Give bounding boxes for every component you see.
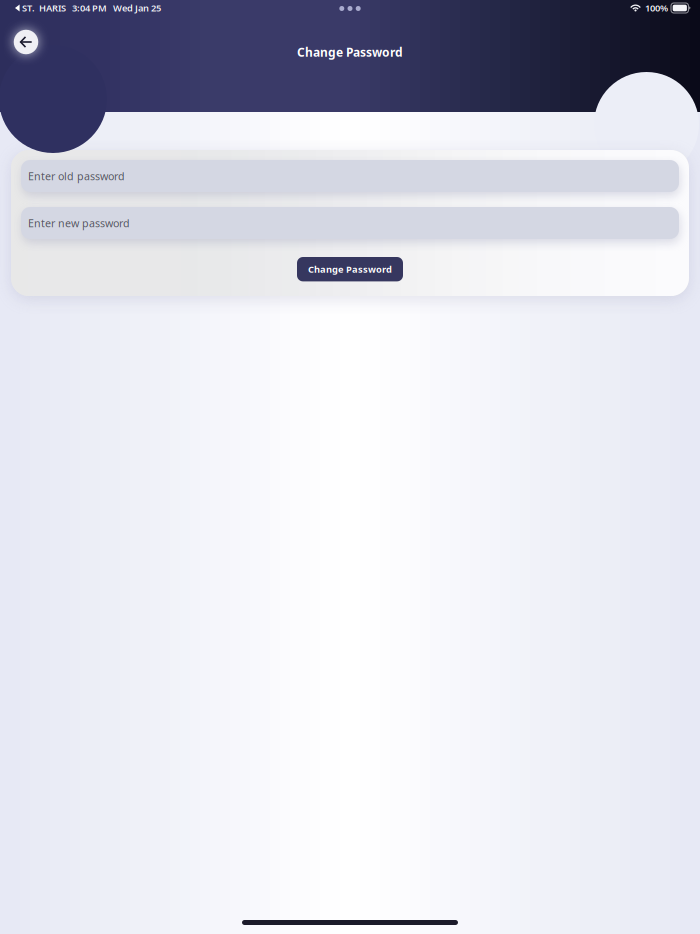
staticText: ST. HARIS 3:04 PM Wed Jan 25 [20, 2, 161, 14]
button[interactable]: Change Password [297, 257, 403, 281]
staticText: Enter new password [28, 216, 130, 230]
staticText: Enter old password [28, 169, 125, 183]
button[interactable]: Back [9, 25, 43, 59]
staticText: Change Password [308, 263, 392, 275]
staticText: 100% [645, 2, 668, 14]
staticText: Change Password [297, 44, 403, 60]
